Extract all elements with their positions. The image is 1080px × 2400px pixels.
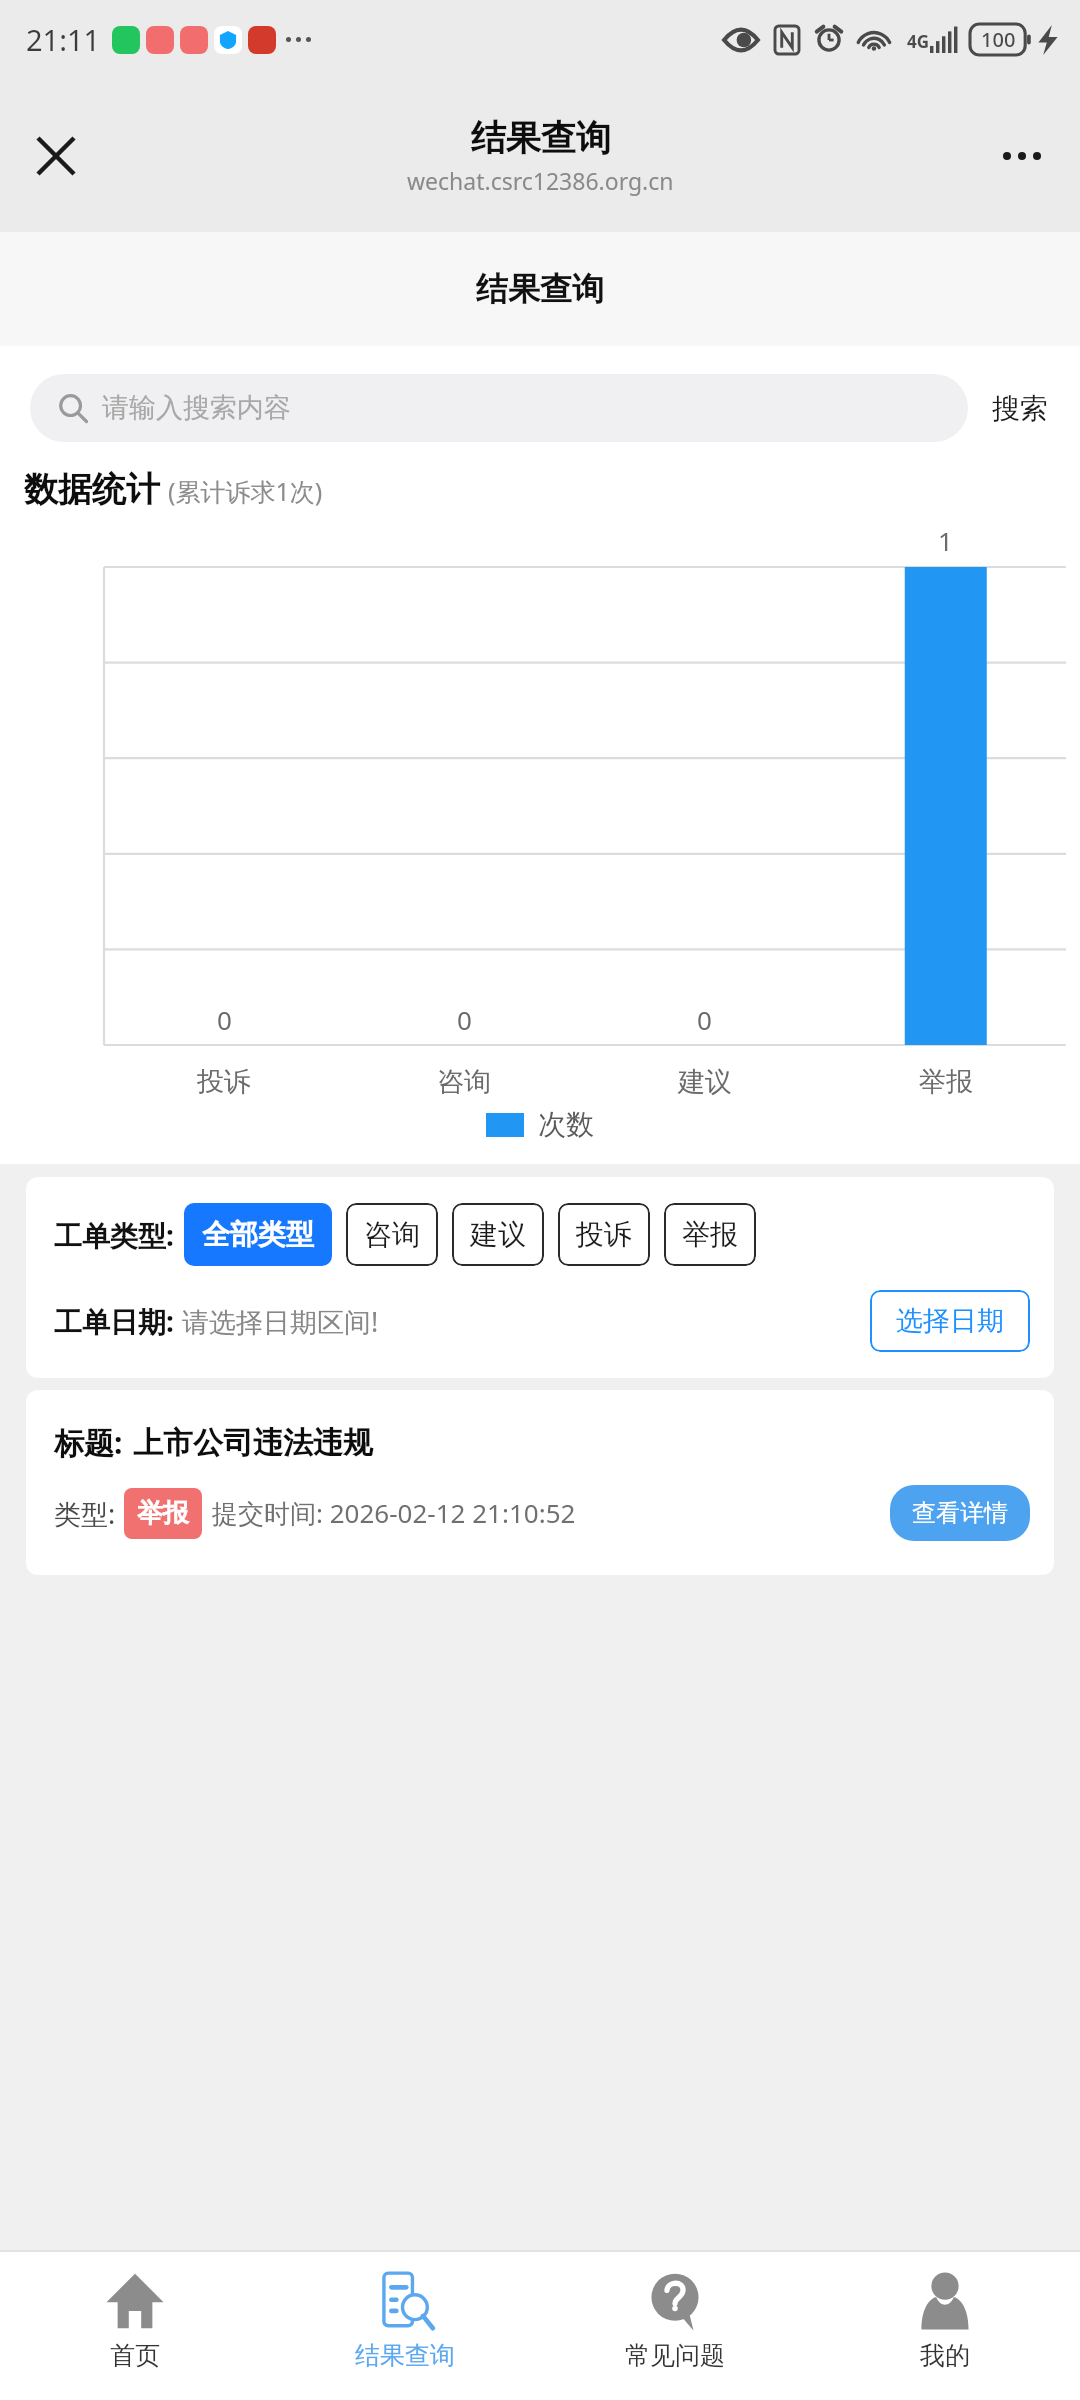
staticText: 结果查询 <box>471 116 611 160</box>
staticText: wechat.csrc12386.org.cn <box>407 165 674 196</box>
button[interactable]: 咨询 <box>346 1203 438 1266</box>
button[interactable]: 结果查询 <box>270 2252 540 2400</box>
staticText: 全部类型 <box>202 1217 314 1252</box>
staticText: 0 <box>217 1002 232 1037</box>
staticText: 结果查询 <box>476 269 604 309</box>
staticText: 1 <box>938 523 953 558</box>
staticText: 咨询 <box>437 1065 491 1099</box>
button[interactable]: 我的 <box>810 2252 1080 2400</box>
staticText: 首页 <box>110 2340 160 2371</box>
button[interactable]: 搜索 <box>968 391 1050 426</box>
staticText: 搜索 <box>992 391 1048 426</box>
button[interactable]: 标题: <box>26 1390 1054 1575</box>
staticText: 选择日期 <box>896 1304 1004 1338</box>
button[interactable]: More options <box>992 126 1052 186</box>
button[interactable]: 请输入搜索内容 <box>30 374 968 442</box>
staticText: 举报 <box>919 1065 973 1099</box>
staticText: 4G <box>907 30 930 53</box>
staticText: 建议 <box>470 1217 526 1252</box>
staticText: 查看详情 <box>912 1498 1008 1528</box>
staticText: 上市公司违法违规 <box>133 1424 373 1462</box>
button[interactable]: 查看详情 <box>890 1485 1030 1541</box>
staticText: 提交时间: 2026-02-12 21:10:52 <box>212 1495 576 1531</box>
staticText: 工单类型: <box>54 1216 174 1254</box>
staticText: 结果查询 <box>355 2340 455 2371</box>
staticText: 请输入搜索内容 <box>102 391 291 425</box>
staticText: 工单日期: <box>54 1302 174 1340</box>
staticText: 咨询 <box>364 1217 420 1252</box>
staticText: 数据统计 <box>24 468 160 511</box>
staticText: 请选择日期区间! <box>182 1303 379 1340</box>
button[interactable]: 建议 <box>452 1203 544 1266</box>
button[interactable]: 常见问题 <box>540 2252 810 2400</box>
button[interactable]: 举报 <box>664 1203 756 1266</box>
staticText: 标题: <box>54 1422 123 1463</box>
button[interactable]: 首页 <box>0 2252 270 2400</box>
button[interactable]: 投诉 <box>558 1203 650 1266</box>
staticText: 投诉 <box>576 1217 632 1252</box>
staticText: 0 <box>457 1002 472 1037</box>
button[interactable]: 全部类型 <box>184 1203 332 1266</box>
staticText: 建议 <box>678 1065 732 1099</box>
staticText: 举报 <box>137 1497 189 1530</box>
staticText: 0 <box>697 1002 712 1037</box>
staticText: 举报 <box>682 1217 738 1252</box>
button[interactable]: 选择日期 <box>870 1290 1030 1352</box>
staticText: 次数 <box>538 1107 594 1142</box>
staticText: 投诉 <box>197 1065 251 1099</box>
staticText: 常见问题 <box>625 2340 725 2371</box>
staticText: (累计诉求1次) <box>168 474 323 508</box>
staticText: 21:11 <box>26 20 101 59</box>
staticText: 100 <box>981 26 1016 53</box>
button[interactable]: Close <box>26 126 86 186</box>
staticText: 类型: <box>54 1495 116 1532</box>
staticText: 我的 <box>920 2340 970 2371</box>
